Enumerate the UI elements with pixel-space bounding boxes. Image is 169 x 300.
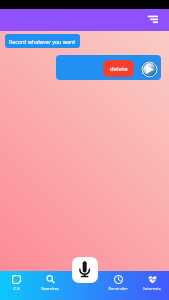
staticText: Searches: [41, 286, 59, 292]
button[interactable]: Record: [72, 257, 98, 283]
staticText: Reminder: [108, 286, 128, 292]
staticText: C.S: [13, 286, 20, 292]
staticText: delete: [110, 65, 128, 73]
button[interactable]: Menu: [141, 12, 158, 29]
button[interactable]: Interests: [135, 271, 169, 292]
button[interactable]: Play: [141, 61, 158, 78]
button[interactable]: delete: [103, 60, 134, 77]
button[interactable]: Searches: [33, 271, 67, 292]
staticText: Interests: [143, 286, 161, 292]
staticText: Record whatever you want: [9, 38, 76, 45]
button[interactable]: delete: [56, 55, 161, 80]
button[interactable]: Reminder: [101, 271, 135, 292]
button[interactable]: Record whatever you want: [5, 34, 80, 48]
button[interactable]: C.S: [0, 271, 33, 292]
